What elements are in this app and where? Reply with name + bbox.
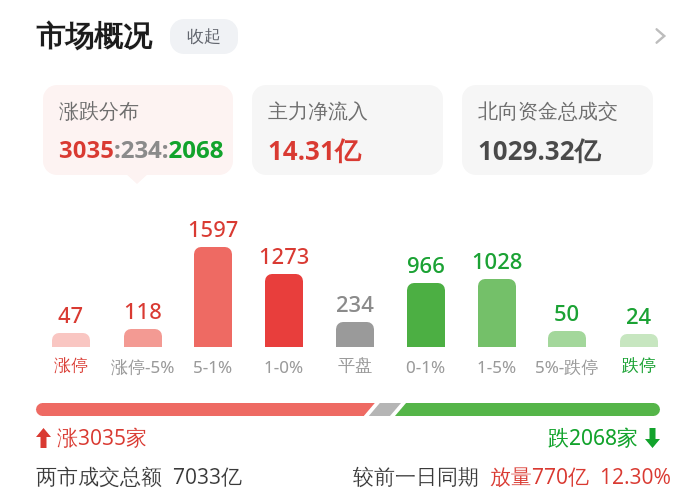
- staticText: 0-1%: [406, 355, 446, 378]
- button[interactable]: [407, 283, 445, 347]
- button[interactable]: [124, 329, 162, 347]
- staticText: 涨停-5%: [111, 355, 175, 378]
- staticText: 1273: [259, 240, 310, 270]
- staticText: 主力净流入: [268, 99, 368, 124]
- button[interactable]: 收起: [170, 19, 238, 54]
- button[interactable]: [194, 247, 232, 347]
- staticText: 1-5%: [477, 355, 517, 378]
- staticText: 涨跌分布: [59, 99, 139, 124]
- staticText: 3035:234:2068: [59, 132, 224, 165]
- staticText: 1597: [188, 213, 239, 243]
- staticText: 跌2068家: [548, 423, 639, 452]
- button[interactable]: 涨跌分布: [43, 85, 233, 175]
- staticText: 24: [626, 300, 652, 330]
- staticText: 跌停: [622, 355, 656, 376]
- button[interactable]: [265, 274, 303, 347]
- button[interactable]: [478, 279, 516, 347]
- staticText: 涨3035家: [57, 423, 148, 452]
- staticText: 14.31亿: [268, 132, 361, 168]
- staticText: 较前一日同期 放量770亿 12.30%: [353, 462, 672, 491]
- button[interactable]: 涨3035家: [36, 423, 148, 452]
- staticText: 涨停: [54, 355, 88, 376]
- button[interactable]: 跌2068家: [548, 423, 660, 452]
- button[interactable]: [620, 334, 658, 347]
- staticText: 两市成交总额 7033亿: [36, 462, 242, 491]
- staticText: 1028: [472, 245, 523, 275]
- staticText: 1029.32亿: [478, 132, 601, 168]
- staticText: 市场概况: [36, 18, 152, 55]
- staticText: 收起: [187, 26, 221, 47]
- button[interactable]: 北向资金总成交: [462, 85, 653, 175]
- button[interactable]: [548, 331, 586, 347]
- staticText: 966: [407, 249, 445, 279]
- staticText: 北向资金总成交: [478, 99, 618, 124]
- staticText: 118: [124, 295, 162, 325]
- button[interactable]: More: [636, 12, 684, 60]
- staticText: 47: [58, 299, 84, 329]
- button[interactable]: 主力净流入: [252, 85, 443, 175]
- staticText: 1-0%: [264, 355, 304, 378]
- staticText: 平盘: [338, 355, 372, 376]
- button[interactable]: [52, 333, 90, 347]
- staticText: 50: [554, 297, 580, 327]
- staticText: 5%-跌停: [535, 355, 599, 378]
- button[interactable]: [336, 322, 374, 347]
- staticText: 5-1%: [193, 355, 233, 378]
- staticText: 234: [336, 288, 374, 318]
